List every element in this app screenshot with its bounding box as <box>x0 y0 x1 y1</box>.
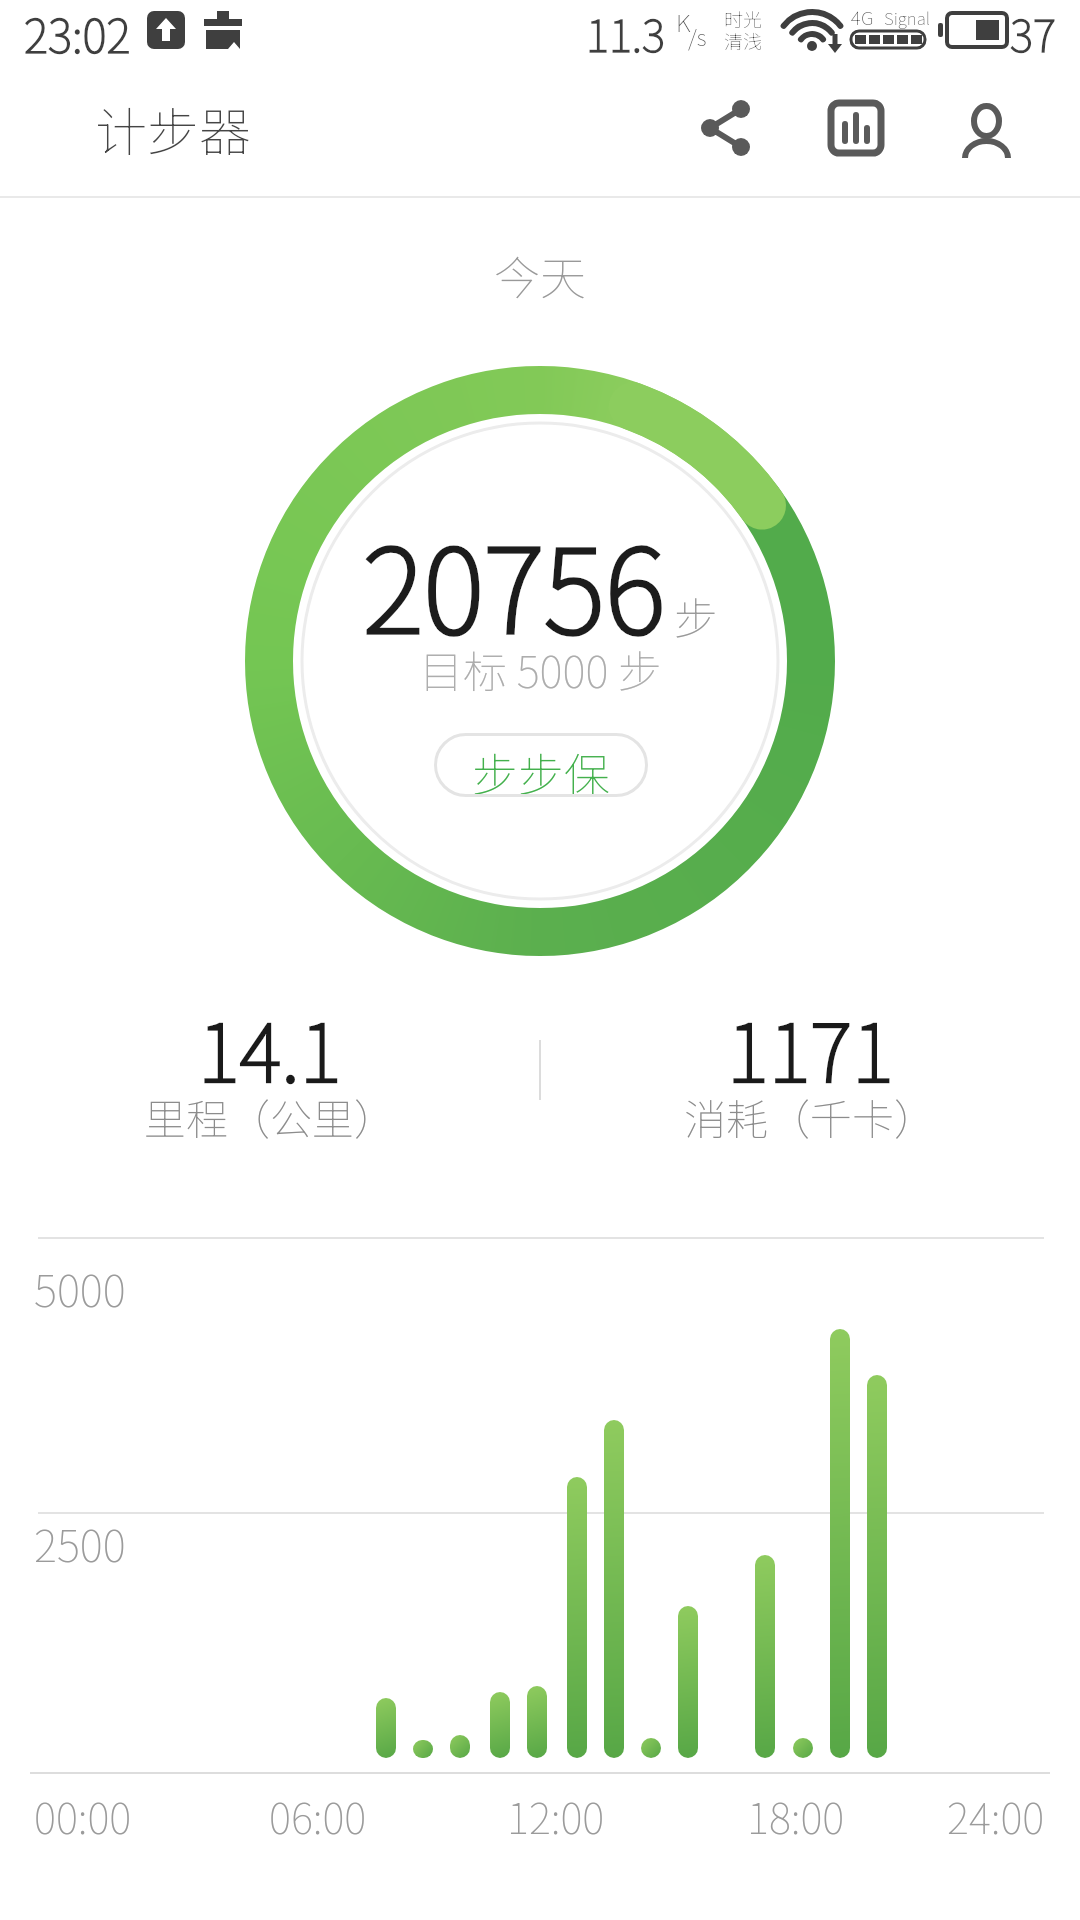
staticText: K <box>676 4 691 39</box>
staticText: 5000 <box>34 1256 126 1320</box>
button[interactable] <box>958 100 1014 156</box>
button[interactable] <box>828 100 884 156</box>
staticText: 步步保 <box>472 739 610 803</box>
staticText: 20756 <box>363 498 666 666</box>
staticText: 4G <box>851 3 874 31</box>
button[interactable]: 步步保 <box>434 733 648 797</box>
staticText: 消耗（千卡） <box>684 1086 937 1147</box>
staticText: 24:00 <box>947 1785 1045 1846</box>
staticText: 23:02 <box>24 0 131 60</box>
staticText: 时光 <box>724 5 763 33</box>
staticText: 2500 <box>34 1511 126 1575</box>
staticText: 今天 <box>494 242 586 309</box>
staticText: 14.1 <box>198 989 342 1105</box>
staticText: 清浅 <box>724 27 763 55</box>
staticText: 00:00 <box>34 1785 132 1846</box>
staticText: /s <box>688 20 707 52</box>
staticText: 计步器 <box>95 91 252 166</box>
staticText: 里程（公里） <box>144 1086 397 1147</box>
staticText: 1171 <box>727 989 894 1105</box>
staticText: 18:00 <box>747 1785 845 1846</box>
staticText: 06:00 <box>269 1785 367 1846</box>
button[interactable] <box>698 100 754 156</box>
staticText: 12:00 <box>507 1785 605 1846</box>
staticText: 11.3 <box>586 1 665 61</box>
staticText: 37 <box>1010 1 1056 61</box>
staticText: 步 <box>674 584 718 648</box>
staticText: Signal <box>884 5 931 30</box>
button[interactable]: 计步器 <box>95 91 252 166</box>
staticText: 目标 5000 步 <box>419 637 663 701</box>
